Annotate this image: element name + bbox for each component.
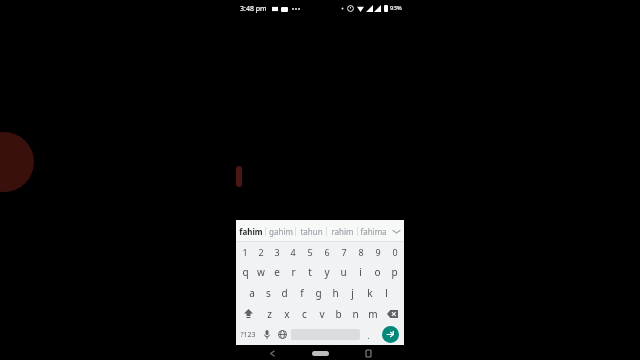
staticText: 5 — [307, 246, 313, 258]
button[interactable]: n — [347, 303, 364, 324]
button[interactable]: Enter — [382, 326, 399, 343]
button[interactable]: 1 — [237, 242, 253, 262]
staticText: x — [284, 307, 290, 321]
button[interactable]: q — [237, 262, 253, 282]
button[interactable]: Shift — [237, 303, 260, 324]
button[interactable]: 3 — [269, 242, 285, 262]
button[interactable]: r — [285, 262, 301, 282]
button[interactable]: m — [364, 303, 381, 324]
button[interactable]: k — [361, 282, 378, 303]
button[interactable]: 7 — [335, 242, 352, 262]
staticText: rahim — [331, 226, 354, 237]
button[interactable]: 0 — [386, 242, 403, 262]
staticText: 93% — [390, 4, 402, 12]
button[interactable]: 2 — [253, 242, 269, 262]
staticText: q — [242, 265, 249, 279]
button[interactable]: 6 — [318, 242, 335, 262]
button[interactable]: o — [369, 262, 386, 282]
button[interactable]: w — [253, 262, 269, 282]
staticText: i — [359, 265, 362, 279]
button[interactable]: v — [313, 303, 330, 324]
staticText: y — [324, 265, 330, 279]
staticText: h — [332, 286, 339, 300]
staticText: c — [302, 307, 307, 321]
staticText: u — [340, 265, 347, 279]
button[interactable]: Home — [308, 347, 332, 359]
button[interactable]: e — [269, 262, 285, 282]
button[interactable]: fahima — [358, 220, 388, 242]
button[interactable]: l — [378, 282, 395, 303]
staticText: gahim — [269, 226, 293, 237]
staticText: p — [391, 265, 398, 279]
staticText: 9 — [375, 246, 381, 258]
button[interactable]: rahim — [327, 220, 357, 242]
staticText: fahim — [239, 226, 263, 237]
staticText: a — [249, 286, 255, 300]
staticText: t — [308, 265, 312, 279]
button[interactable]: h — [327, 282, 344, 303]
staticText: e — [274, 265, 280, 279]
button[interactable]: u — [335, 262, 352, 282]
button[interactable]: x — [278, 303, 296, 324]
staticText: m — [368, 307, 378, 321]
button[interactable]: y — [318, 262, 335, 282]
button[interactable]: ?123 — [237, 324, 259, 345]
staticText: 1 — [242, 246, 248, 258]
button[interactable]: gahim — [266, 220, 295, 242]
staticText: 2 — [258, 246, 264, 258]
button[interactable]: 8 — [352, 242, 369, 262]
staticText: . — [367, 329, 370, 341]
staticText: f — [300, 286, 304, 300]
staticText: w — [257, 265, 265, 279]
button[interactable]: 5 — [301, 242, 318, 262]
staticText: s — [266, 286, 271, 300]
button[interactable]: Change keyboard language — [274, 324, 291, 345]
button[interactable]: . — [360, 324, 377, 345]
staticText: z — [267, 307, 272, 321]
staticText: 4 — [290, 246, 296, 258]
staticText: tahun — [300, 226, 323, 237]
button[interactable]: Expand suggestions — [388, 220, 404, 242]
button[interactable]: 4 — [285, 242, 301, 262]
button[interactable]: Recent apps — [362, 347, 374, 359]
staticText: 3 — [274, 246, 280, 258]
staticText: v — [319, 307, 325, 321]
staticText: 0 — [392, 246, 398, 258]
staticText: 6 — [324, 246, 330, 258]
staticText: n — [352, 307, 359, 321]
button[interactable]: t — [301, 262, 318, 282]
button[interactable]: Backspace — [381, 303, 403, 324]
button[interactable]: z — [260, 303, 278, 324]
staticText: fahima — [360, 226, 387, 237]
staticText: k — [367, 286, 373, 300]
button[interactable]: s — [260, 282, 276, 303]
staticText: o — [374, 265, 381, 279]
staticText: b — [335, 307, 342, 321]
button[interactable]: Voice input — [259, 324, 274, 345]
button[interactable]: fahim — [236, 220, 265, 242]
button[interactable]: f — [293, 282, 310, 303]
button[interactable]: i — [352, 262, 369, 282]
button[interactable]: j — [344, 282, 361, 303]
staticText: j — [351, 286, 354, 300]
staticText: r — [291, 265, 296, 279]
button[interactable]: tahun — [296, 220, 326, 242]
button[interactable]: c — [296, 303, 313, 324]
button[interactable]: g — [310, 282, 327, 303]
button[interactable]: p — [386, 262, 403, 282]
staticText: 3:48 pm — [240, 4, 267, 14]
staticText: d — [281, 286, 288, 300]
other: Wi-Fi — [357, 5, 364, 12]
button[interactable]: b — [330, 303, 347, 324]
staticText: ?123 — [240, 330, 256, 340]
button[interactable]: d — [276, 282, 293, 303]
button[interactable]: 9 — [369, 242, 386, 262]
staticText: 8 — [358, 246, 364, 258]
staticText: l — [385, 286, 388, 300]
button[interactable]: a — [244, 282, 260, 303]
staticText: 7 — [341, 246, 347, 258]
button[interactable]: Back — [266, 347, 278, 359]
staticText: g — [315, 286, 322, 300]
